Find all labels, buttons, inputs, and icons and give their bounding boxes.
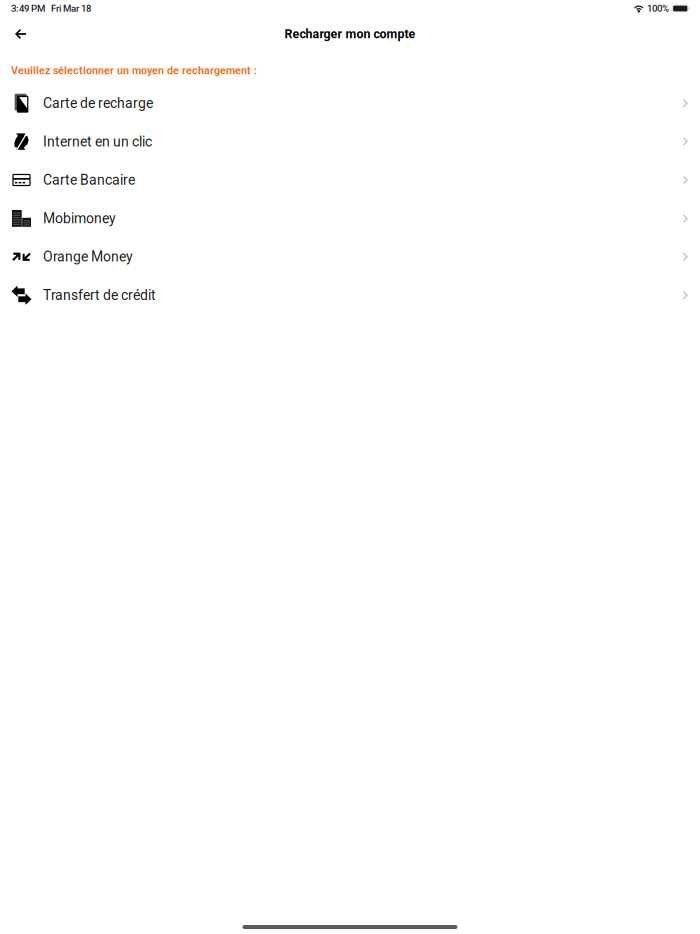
staticText: Orange Money	[43, 249, 133, 265]
staticText: Fri Mar 18	[51, 3, 91, 14]
button[interactable]: Carte de recharge	[0, 84, 700, 122]
staticText: Veuillez sélectionner un moyen de rechar…	[11, 64, 257, 77]
staticText: Recharger mon compte	[284, 27, 415, 41]
staticText: Mobimoney	[43, 210, 116, 227]
button[interactable]: Orange Money	[0, 238, 700, 276]
staticText: 100%	[647, 3, 669, 14]
staticText: Carte Bancaire	[43, 172, 135, 188]
button[interactable]: Transfert de crédit	[0, 276, 700, 314]
button[interactable]: Mobimoney	[0, 199, 700, 238]
staticText: Transfert de crédit	[43, 287, 156, 303]
staticText: Carte de recharge	[43, 95, 153, 111]
button[interactable]: Back	[0, 21, 36, 47]
button[interactable]: Internet en un clic	[0, 122, 700, 161]
staticText: Internet en un clic	[43, 133, 152, 150]
staticText: 3:49 PM	[11, 3, 45, 14]
button[interactable]: Carte Bancaire	[0, 161, 700, 199]
